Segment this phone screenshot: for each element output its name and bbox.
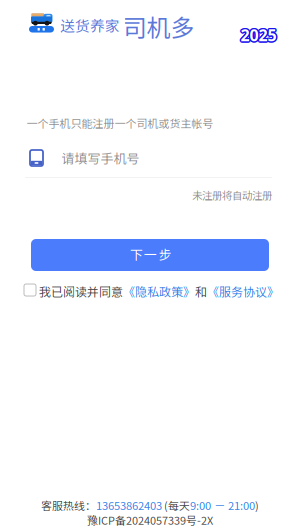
staticText: 请填写手机号 [61,148,139,167]
staticText: (每天 [162,497,190,513]
staticText: 一个手机只能注册一个司机或货主帐号 [26,115,213,131]
staticText: 和 [195,282,207,300]
staticText: 2025 [241,25,277,47]
staticText: 2025 [239,24,275,46]
staticText: 《隐私政策》 [123,282,195,300]
staticText: 豫ICP备2024057339号-2X [87,512,213,528]
staticText: 未注册将自动注册 [192,187,272,203]
staticText: 2025 [242,24,278,46]
staticText: 下一步 [130,245,171,263]
staticText: 2025 [240,26,276,47]
staticText: 司机多 [122,9,194,44]
staticText: 9:00 － 21:00 [190,497,255,513]
button[interactable]: Agree to the privacy policy and service … [24,284,36,296]
staticText: 2025 [241,23,277,45]
staticText: 送货养家 [60,14,120,36]
staticText: 客服热线： [41,497,96,513]
staticText: 13653862403 [96,497,162,513]
button[interactable]: 《服务协议》 [207,282,279,300]
button[interactable]: 《隐私政策》 [123,282,195,300]
staticText: 2025 [240,24,276,46]
staticText: 2025 [239,23,275,45]
staticText: 我已阅读并同意 [39,282,123,300]
button[interactable]: 下一步 [31,239,269,271]
staticText: 2025 [239,25,275,47]
button[interactable]: 13653862403 [96,497,162,513]
staticText: ) [255,497,259,513]
staticText: 2025 [240,23,276,44]
staticText: 《服务协议》 [207,282,279,300]
